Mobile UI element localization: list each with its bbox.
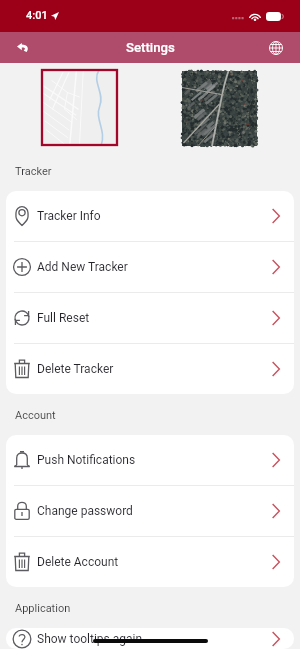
staticText: Tracker bbox=[15, 165, 52, 178]
staticText: Add New Tracker bbox=[37, 260, 128, 274]
button[interactable]: Delete Tracker bbox=[6, 344, 294, 394]
button[interactable]: Delete Account bbox=[6, 537, 294, 587]
staticText: Settings bbox=[126, 40, 175, 55]
button[interactable]: Push Notifications bbox=[6, 435, 294, 485]
staticText: Delete Account bbox=[37, 555, 119, 569]
button[interactable]: Add New Tracker bbox=[6, 242, 294, 292]
staticText: Change password bbox=[37, 504, 133, 518]
button[interactable]: Back bbox=[2, 32, 44, 63]
staticText: Delete Tracker bbox=[37, 362, 114, 376]
button[interactable]: Standard map bbox=[42, 70, 117, 145]
button[interactable]: Tracker Info bbox=[6, 191, 294, 241]
staticText: Push Notifications bbox=[37, 453, 136, 467]
staticText: Tracker Info bbox=[37, 209, 101, 223]
staticText: 4:01 bbox=[26, 9, 48, 22]
button[interactable]: Full Reset bbox=[6, 293, 294, 343]
button[interactable]: Show tooltips again bbox=[6, 628, 294, 649]
staticText: Show tooltips again bbox=[37, 632, 143, 646]
button[interactable]: Change password bbox=[6, 486, 294, 536]
staticText: Full Reset bbox=[37, 311, 90, 325]
button[interactable]: Satellite map bbox=[182, 71, 257, 146]
staticText: Account bbox=[15, 409, 56, 422]
button[interactable]: Language bbox=[255, 32, 297, 63]
staticText: Application bbox=[15, 602, 71, 615]
